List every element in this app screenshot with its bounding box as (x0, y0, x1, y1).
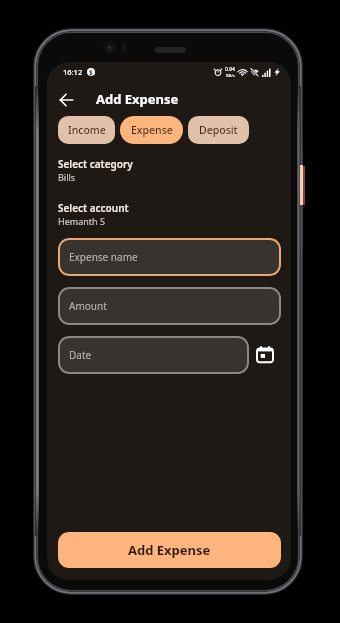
staticText: KB/s (226, 73, 235, 78)
staticText: Select account (58, 201, 129, 215)
button[interactable]: Income (58, 116, 115, 144)
button[interactable]: Add Expense (58, 532, 281, 568)
staticText: Amount (69, 299, 107, 313)
staticText: 16:12 (63, 67, 83, 77)
button[interactable]: Date (58, 336, 249, 374)
staticText: Expense name (69, 250, 138, 264)
staticText: Bills (58, 171, 76, 183)
staticText: Deposit (199, 123, 238, 137)
button[interactable]: Expense name (58, 238, 281, 276)
button[interactable]: Pick date (254, 344, 276, 366)
staticText: Hemanth S (58, 215, 105, 227)
button[interactable]: Amount (58, 287, 281, 325)
staticText: 0.94 (225, 66, 235, 73)
button[interactable]: Deposit (188, 116, 249, 144)
staticText: Add Expense (96, 90, 179, 108)
staticText: Date (69, 348, 92, 362)
button[interactable]: Back (54, 88, 78, 112)
staticText: Add Expense (128, 541, 211, 559)
staticText: Income (68, 123, 106, 137)
staticText: Select category (58, 157, 133, 171)
button[interactable]: Expense (120, 116, 183, 144)
staticText: Expense (131, 123, 173, 137)
staticText: $ (89, 68, 93, 76)
